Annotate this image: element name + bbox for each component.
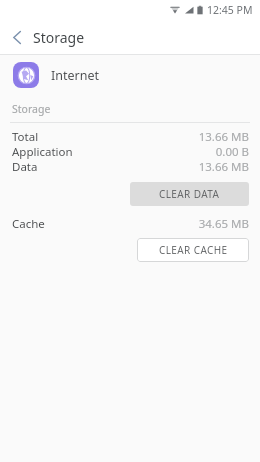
staticText: 13.66 MB	[198, 159, 249, 174]
staticText: Storage	[12, 102, 51, 116]
button[interactable]: Internet	[0, 55, 260, 95]
staticText: 12:45 PM	[207, 3, 253, 17]
staticText: 0.00 B	[215, 144, 249, 159]
staticText: Cache	[12, 216, 45, 231]
staticText: Storage	[33, 28, 85, 47]
button[interactable]: CLEAR CACHE	[137, 238, 249, 262]
staticText: Data	[12, 159, 38, 174]
button[interactable]: Back	[0, 20, 34, 54]
staticText: 13.66 MB	[198, 129, 249, 144]
staticText: Internet	[51, 67, 99, 84]
staticText: Total	[12, 129, 39, 144]
button[interactable]: CLEAR DATA	[130, 182, 249, 206]
staticText: CLEAR CACHE	[159, 243, 228, 257]
staticText: Application	[12, 144, 73, 159]
staticText: CLEAR DATA	[159, 187, 220, 201]
staticText: 34.65 MB	[198, 216, 249, 231]
